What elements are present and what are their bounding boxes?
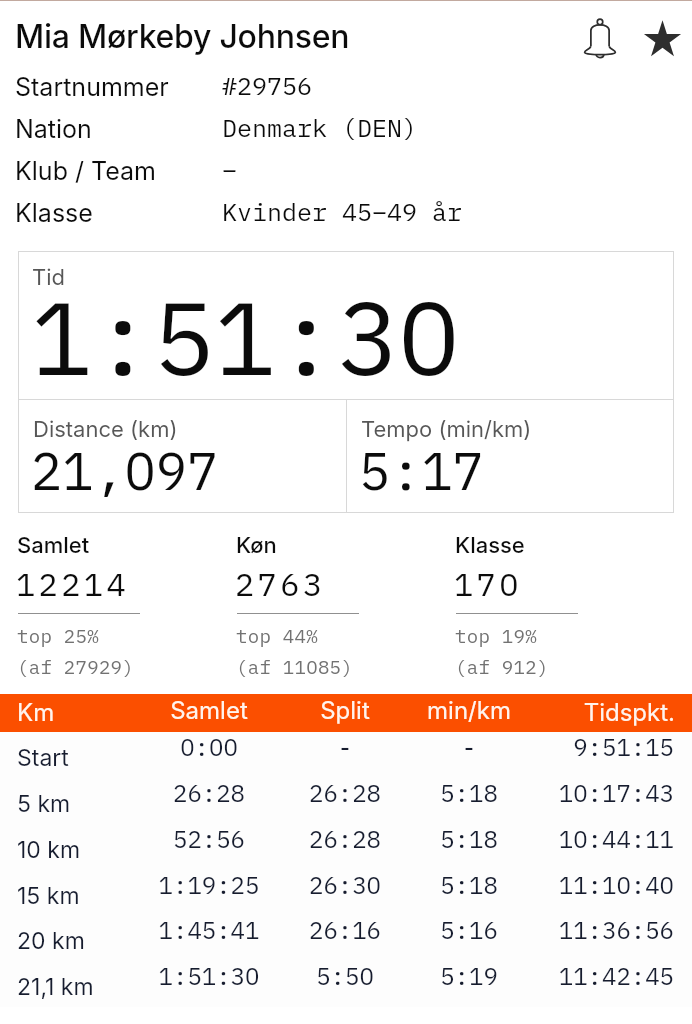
staticText: min/km bbox=[379, 696, 559, 725]
staticText: 26:16 bbox=[255, 914, 435, 945]
staticText: 1:19:25 bbox=[119, 869, 299, 900]
button[interactable] bbox=[0, 150, 692, 192]
button[interactable] bbox=[0, 824, 692, 870]
staticText: Samlet bbox=[119, 696, 299, 725]
staticText: top 44% bbox=[236, 624, 318, 649]
staticText: 26:28 bbox=[255, 823, 435, 854]
staticText: 9:51:15 bbox=[414, 731, 674, 762]
staticText: 5:18 bbox=[379, 777, 559, 808]
staticText: Tempo (min/km) bbox=[361, 416, 532, 443]
staticText: 21,097 bbox=[31, 437, 219, 505]
staticText: 5:50 bbox=[255, 960, 435, 991]
button[interactable] bbox=[0, 961, 692, 1007]
staticText: 15 km bbox=[17, 882, 80, 910]
staticText: - bbox=[379, 731, 559, 762]
staticText: 10:44:11 bbox=[414, 823, 674, 854]
staticText: 26:28 bbox=[255, 777, 435, 808]
staticText: Tidspkt. bbox=[414, 698, 675, 727]
staticText: 1:45:41 bbox=[119, 914, 299, 945]
staticText: Klasse bbox=[455, 532, 525, 559]
staticText: 20 km bbox=[17, 927, 85, 955]
staticText: top 19% bbox=[455, 624, 537, 649]
button[interactable] bbox=[0, 108, 692, 150]
staticText: 0:00 bbox=[119, 731, 299, 762]
staticText: Nation bbox=[15, 114, 92, 144]
staticText: 1:51:30 bbox=[119, 960, 299, 991]
staticText: 2763 bbox=[235, 563, 326, 605]
staticText: 5:16 bbox=[379, 914, 559, 945]
button[interactable] bbox=[0, 66, 692, 108]
button[interactable]: Favourite bbox=[636, 8, 688, 68]
staticText: 5 km bbox=[17, 790, 71, 818]
staticText: Samlet bbox=[17, 532, 90, 559]
button[interactable]: Notifications bbox=[574, 8, 626, 68]
button[interactable] bbox=[0, 778, 692, 824]
button[interactable] bbox=[0, 869, 692, 915]
staticText: 5:17 bbox=[359, 437, 484, 505]
staticText: Mia Mørkeby Johnsen bbox=[15, 17, 350, 56]
staticText: 12214 bbox=[16, 563, 130, 605]
button[interactable] bbox=[0, 915, 692, 961]
staticText: 1:51:30 bbox=[31, 270, 460, 403]
button[interactable] bbox=[0, 732, 692, 778]
staticText: 5:18 bbox=[379, 869, 559, 900]
staticText: 10:17:43 bbox=[414, 777, 674, 808]
staticText: 21,1 km bbox=[17, 973, 94, 1001]
staticText: Tid bbox=[32, 264, 65, 291]
staticText: 5:18 bbox=[379, 823, 559, 854]
button[interactable] bbox=[0, 192, 692, 234]
staticText: Startnummer bbox=[15, 72, 169, 102]
staticText: Split bbox=[255, 696, 435, 725]
staticText: – bbox=[222, 153, 238, 186]
staticText: - bbox=[255, 731, 435, 762]
staticText: Køn bbox=[236, 532, 277, 559]
staticText: 11:36:56 bbox=[414, 914, 674, 945]
staticText: (af 11085) bbox=[236, 655, 354, 680]
staticText: Km bbox=[17, 698, 55, 727]
staticText: 26:28 bbox=[119, 777, 299, 808]
staticText: Distance (km) bbox=[33, 416, 178, 443]
staticText: Klasse bbox=[15, 198, 93, 228]
staticText: 11:10:40 bbox=[414, 869, 674, 900]
staticText: (af 27929) bbox=[17, 655, 135, 680]
staticText: 52:56 bbox=[119, 823, 299, 854]
staticText: top 25% bbox=[17, 624, 99, 649]
staticText: #29756 bbox=[222, 69, 313, 102]
staticText: 5:19 bbox=[379, 960, 559, 991]
staticText: Start bbox=[17, 744, 69, 772]
staticText: 26:30 bbox=[255, 869, 435, 900]
staticText: (af 912) bbox=[455, 655, 549, 680]
staticText: Kvinder 45–49 år bbox=[222, 195, 463, 228]
staticText: 10 km bbox=[17, 836, 81, 864]
staticText: 170 bbox=[454, 563, 522, 605]
staticText: 11:42:45 bbox=[414, 960, 674, 991]
staticText: Klub / Team bbox=[15, 156, 156, 186]
staticText: Denmark (DEN) bbox=[222, 111, 418, 144]
